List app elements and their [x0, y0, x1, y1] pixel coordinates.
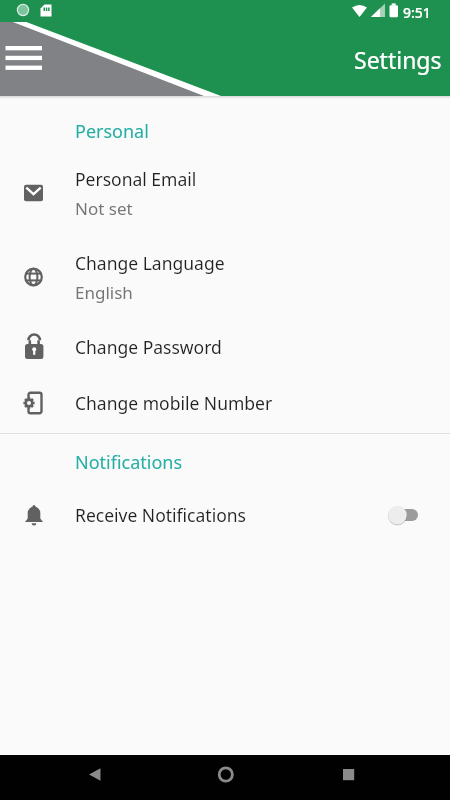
staticText: Personal [75, 119, 149, 144]
staticText: Notifications [75, 450, 183, 475]
button[interactable]: Change Language [0, 235, 450, 319]
staticText: Change Password [75, 335, 222, 359]
staticText: Receive Notifications [75, 503, 246, 527]
button[interactable]: Change Password [0, 319, 450, 375]
staticText: Change Language [75, 251, 225, 275]
button[interactable]: Receive Notifications [0, 488, 450, 542]
staticText: 9:51 [403, 3, 431, 22]
button[interactable] [0, 30, 56, 86]
button[interactable] [388, 505, 418, 525]
staticText: Change mobile Number [75, 391, 273, 415]
staticText: Settings [354, 44, 442, 75]
button[interactable] [300, 755, 450, 800]
button[interactable] [150, 755, 300, 800]
staticText: English [75, 281, 133, 304]
staticText: Not set [75, 197, 133, 220]
button[interactable] [0, 755, 150, 800]
button[interactable]: Change mobile Number [0, 375, 450, 431]
staticText: Personal Email [75, 167, 197, 191]
button[interactable]: Personal Email [0, 151, 450, 235]
